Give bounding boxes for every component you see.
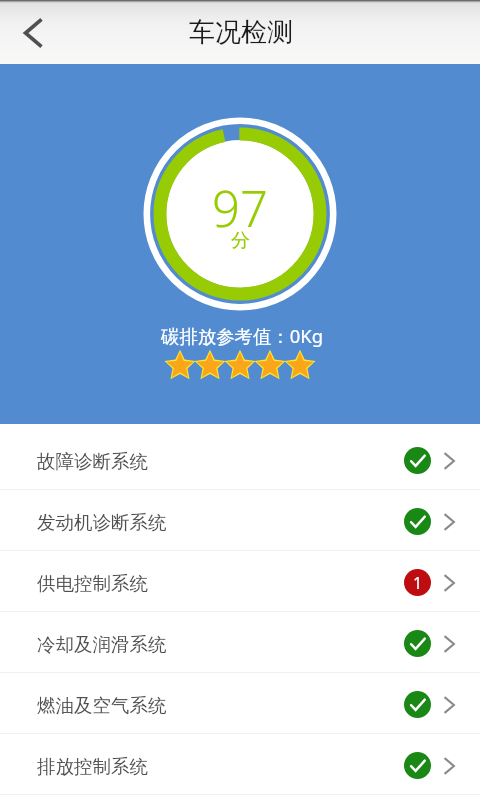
button[interactable]: 供电控制系统 — [0, 551, 480, 611]
staticText: 碳排放参考值：0Kg — [161, 323, 323, 348]
button[interactable]: 故障诊断系统 — [0, 429, 480, 489]
staticText: 冷却及润滑系统 — [37, 633, 167, 656]
staticText: 供电控制系统 — [37, 572, 148, 595]
staticText: 车况检测 — [189, 16, 293, 49]
button[interactable]: 燃油及空气系统 — [0, 673, 480, 733]
staticText: 1 — [413, 572, 423, 594]
staticText: 燃油及空气系统 — [37, 694, 167, 717]
staticText: 分 — [231, 229, 250, 253]
staticText: 排放控制系统 — [37, 755, 148, 778]
button[interactable]: 发动机诊断系统 — [0, 490, 480, 550]
button[interactable]: Back — [0, 0, 62, 64]
button[interactable]: 冷却及润滑系统 — [0, 612, 480, 672]
staticText: 97 — [212, 175, 268, 242]
staticText: 故障诊断系统 — [37, 450, 148, 473]
staticText: 发动机诊断系统 — [37, 511, 167, 534]
button[interactable]: 排放控制系统 — [0, 734, 480, 794]
